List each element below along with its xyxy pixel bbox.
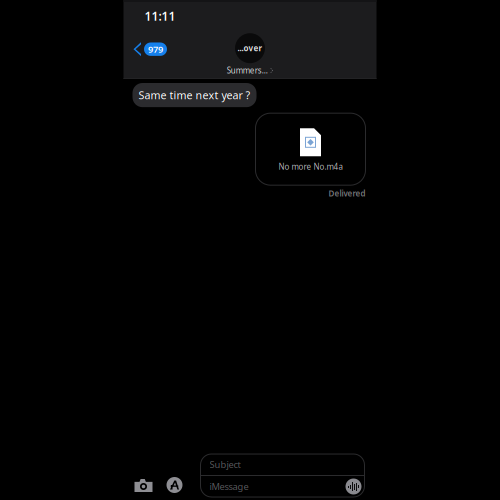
staticText: Subject: [209, 458, 240, 471]
staticText: No more No.m4a: [278, 161, 342, 172]
staticText: Same time next year ?: [138, 88, 250, 102]
button[interactable]: Record audio message: [345, 478, 361, 494]
staticText: Delivered: [328, 188, 365, 199]
button[interactable]: 979: [123, 38, 173, 60]
staticText: 979: [148, 43, 163, 55]
staticText: Summers...: [227, 65, 268, 76]
staticText: ...over: [237, 43, 262, 53]
button[interactable]: iMessage apps: [160, 471, 188, 497]
button[interactable]: Take photo: [123, 471, 160, 497]
staticText: iMessage: [209, 480, 248, 493]
staticText: 11:11: [144, 8, 175, 24]
button[interactable]: ...over: [227, 32, 273, 76]
